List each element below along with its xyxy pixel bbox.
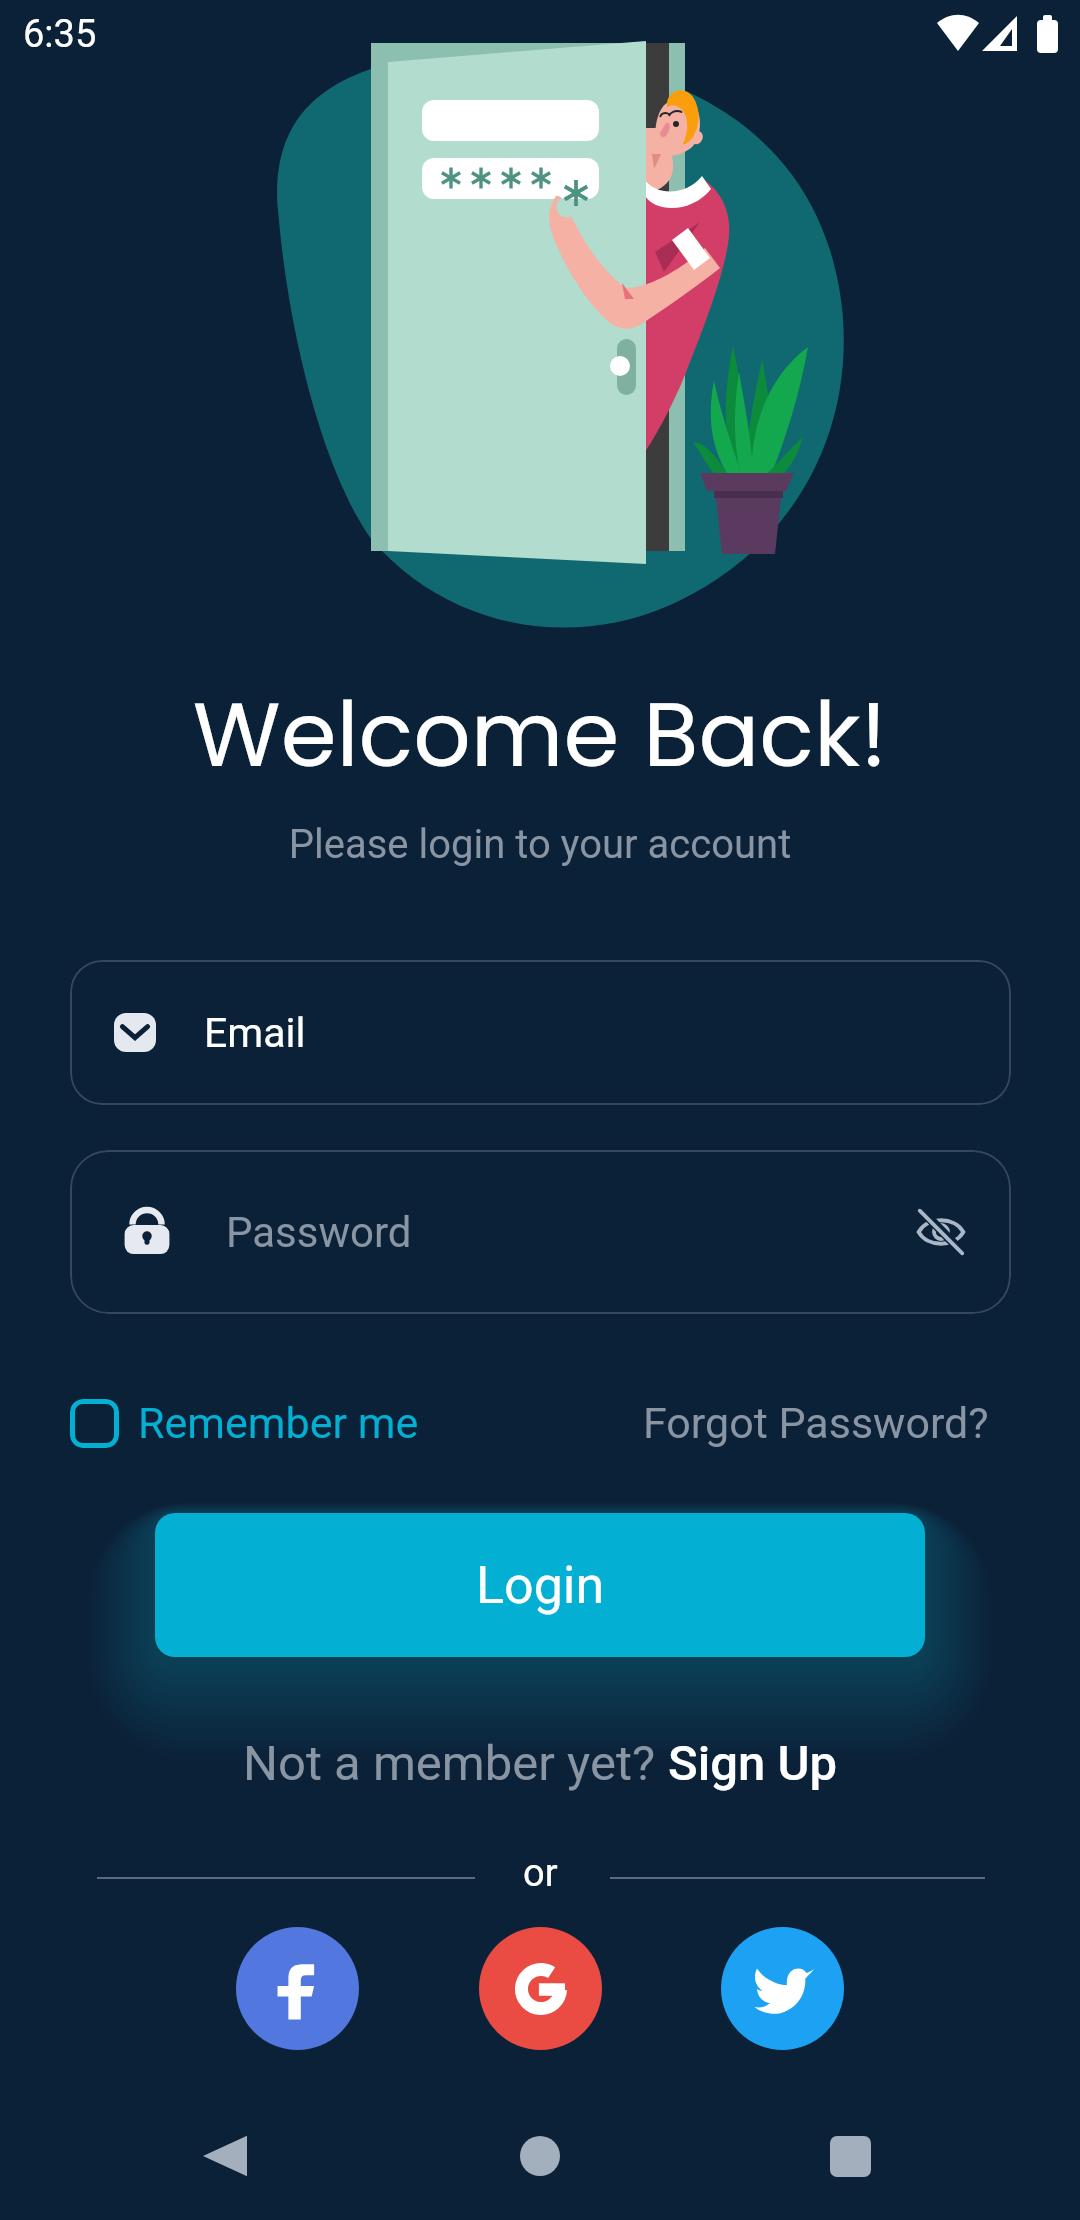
staticText: Sign Up (668, 1735, 837, 1792)
staticText: 6:35 (23, 12, 97, 57)
button[interactable]: Forgot Password? (643, 1398, 989, 1448)
button[interactable]: Sign in with Google (479, 1927, 602, 2050)
button[interactable]: Remember me (70, 1398, 419, 1448)
button[interactable]: Back (178, 2109, 272, 2203)
staticText: Login (476, 1555, 605, 1616)
staticText: Please login to your account (0, 821, 1080, 868)
staticText: Not a member yet? (243, 1735, 668, 1792)
button[interactable]: Home (493, 2109, 587, 2203)
staticText: Email (204, 1009, 306, 1057)
button[interactable]: Sign Up (668, 1735, 837, 1792)
staticText: Password (226, 1208, 412, 1257)
button[interactable]: Login (155, 1513, 925, 1657)
staticText: Remember me (138, 1398, 419, 1448)
button[interactable]: Sign in with Twitter (721, 1927, 844, 2050)
staticText: Forgot Password? (643, 1398, 989, 1448)
button[interactable]: Email (70, 960, 1011, 1105)
button[interactable]: Sign in with Facebook (236, 1927, 359, 2050)
button[interactable]: Show password (909, 1200, 973, 1264)
staticText: Welcome Back! (0, 672, 1080, 798)
staticText: or (523, 1851, 558, 1896)
button[interactable]: Recent apps (803, 2109, 897, 2203)
button[interactable]: Password (70, 1150, 1011, 1314)
